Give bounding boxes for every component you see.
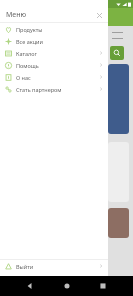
button[interactable]: Search [110, 46, 124, 60]
staticText: Продукты [16, 26, 43, 33]
button[interactable]: Close [95, 11, 103, 19]
button[interactable]: Стать партнером [0, 83, 108, 95]
button[interactable]: Home [60, 279, 74, 293]
staticText: Меню [6, 10, 27, 20]
staticText: Помощь [16, 62, 39, 69]
staticText: Стать партнером [16, 86, 62, 93]
staticText: Выйти [16, 263, 34, 270]
button[interactable]: Каталог [0, 47, 108, 59]
staticText: Все акции [16, 38, 43, 45]
button[interactable]: Recents [96, 279, 110, 293]
button[interactable]: Выйти [0, 260, 108, 272]
button[interactable]: Помощь [0, 59, 108, 71]
button[interactable]: Menu [112, 29, 126, 43]
button[interactable]: О нас [0, 71, 108, 83]
button[interactable]: Back [23, 279, 37, 293]
button[interactable]: Продукты [0, 23, 108, 35]
button[interactable]: Все акции [0, 35, 108, 47]
staticText: О нас [16, 74, 31, 81]
staticText: Каталог [16, 50, 37, 57]
